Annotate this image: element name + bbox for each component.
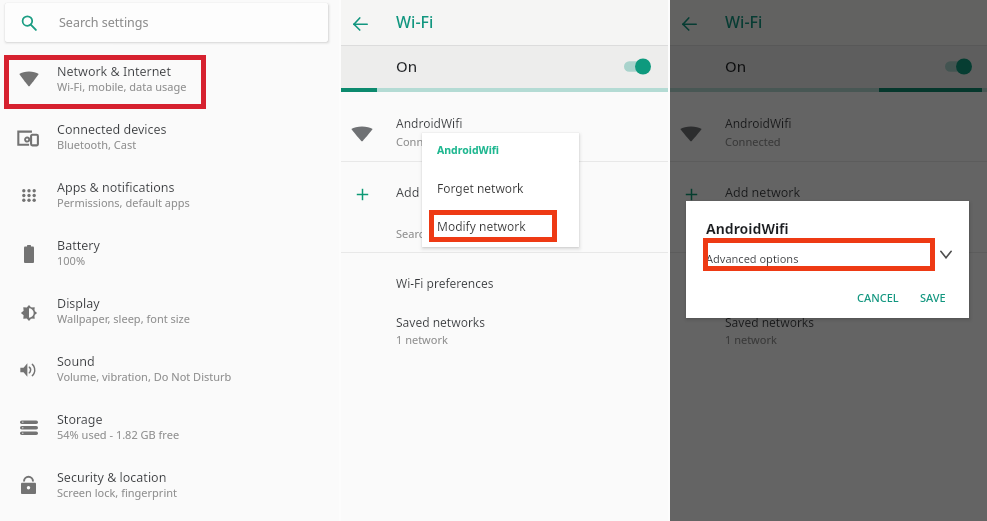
button[interactable]: SAVE: [912, 285, 956, 311]
button[interactable]: Back: [676, 10, 703, 37]
staticText: SAVE: [920, 290, 946, 305]
staticText: Network & Internet: [57, 63, 171, 80]
staticText: Wallpaper, sleep, font size: [57, 311, 190, 326]
button[interactable]: Security & location: [0, 458, 339, 516]
staticText: AndroidWifi: [396, 115, 463, 131]
staticText: Wi-Fi, mobile, data usage: [57, 79, 187, 94]
staticText: Volume, vibration, Do Not Disturb: [57, 369, 232, 384]
staticText: AndroidWifi: [437, 143, 500, 157]
button[interactable]: Modify network: [422, 209, 579, 247]
staticText: 54% used - 1.82 GB free: [57, 427, 180, 442]
button[interactable]: Back: [347, 10, 374, 37]
staticText: Battery: [57, 237, 100, 254]
staticText: Screen lock, fingerprint: [57, 485, 178, 500]
staticText: AndroidWifi: [706, 219, 789, 238]
staticText: Connected devices: [57, 121, 167, 138]
button[interactable]: Sound: [0, 342, 339, 400]
staticText: Bluetooth, Cast: [57, 137, 137, 152]
button[interactable]: Network & Internet: [0, 52, 339, 110]
staticText: Apps & notifications: [57, 179, 175, 196]
staticText: Search: [396, 226, 431, 241]
staticText: On: [725, 56, 747, 76]
button[interactable]: Battery: [0, 226, 339, 284]
staticText: Advanced options: [706, 251, 799, 266]
button[interactable]: On: [670, 46, 987, 88]
staticText: Wi-Fi: [396, 11, 434, 33]
staticText: Connected: [396, 134, 452, 149]
staticText: Saved networks: [396, 314, 486, 330]
staticText: 1 network: [396, 332, 448, 347]
staticText: 1 network: [725, 332, 777, 347]
staticText: Modify network: [437, 218, 526, 234]
staticText: Storage: [57, 411, 103, 428]
staticText: Forget network: [437, 180, 524, 196]
staticText: AndroidWifi: [725, 115, 792, 131]
staticText: Permissions, default apps: [57, 195, 190, 210]
button[interactable]: CANCEL: [849, 285, 907, 311]
staticText: Add network: [725, 184, 801, 201]
button[interactable]: On: [341, 46, 668, 88]
button[interactable]: AndroidWifi: [670, 104, 987, 160]
staticText: Search: [725, 226, 760, 241]
button[interactable]: Forget network: [422, 171, 579, 209]
button[interactable]: Storage: [0, 400, 339, 458]
staticText: Sound: [57, 353, 95, 370]
button[interactable]: Search settings: [5, 3, 328, 42]
staticText: Security & location: [57, 469, 167, 486]
button[interactable]: Connected devices: [0, 110, 339, 168]
staticText: Display: [57, 295, 100, 312]
button[interactable]: Display: [0, 284, 339, 342]
staticText: 100%: [57, 253, 86, 268]
staticText: On: [396, 56, 418, 76]
button[interactable]: Advanced options: [686, 241, 969, 275]
staticText: Saved networks: [725, 314, 815, 330]
staticText: Wi-Fi: [725, 11, 763, 33]
staticText: Wi-Fi preferences: [396, 275, 494, 291]
staticText: Connected: [725, 134, 781, 149]
button[interactable]: AndroidWifi: [341, 104, 668, 160]
button[interactable]: Add network: [670, 176, 987, 214]
staticText: Search settings: [59, 14, 149, 31]
button[interactable]: Apps & notifications: [0, 168, 339, 226]
staticText: Add network: [396, 184, 472, 201]
staticText: CANCEL: [857, 290, 899, 305]
button[interactable]: Add network: [341, 176, 668, 214]
